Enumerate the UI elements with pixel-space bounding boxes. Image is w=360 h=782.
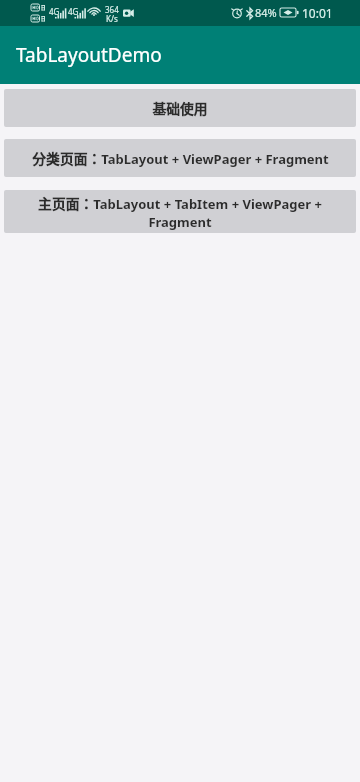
button[interactable]: 基础使用	[4, 89, 356, 127]
staticText: 基础使用	[152, 98, 208, 118]
staticText: 10:01	[302, 5, 333, 21]
staticText: 主页面：TabLayout + TabItem + ViewPager + Fr…	[16, 193, 344, 231]
button[interactable]: TabLayoutDemo app bar	[0, 26, 360, 84]
staticText: K/s	[106, 13, 118, 24]
staticText: 分类页面：TabLayout + ViewPager + Fragment	[32, 148, 329, 168]
button[interactable]: 主页面：TabLayout + TabItem + ViewPager + Fr…	[4, 190, 356, 233]
staticText: TabLayoutDemo	[16, 42, 162, 68]
staticText: 84%	[255, 5, 277, 20]
staticText: 4G	[68, 6, 79, 17]
staticText: 364	[105, 4, 119, 15]
button[interactable]: 分类页面：TabLayout + ViewPager + Fragment	[4, 139, 356, 177]
staticText: 4G	[49, 6, 60, 17]
